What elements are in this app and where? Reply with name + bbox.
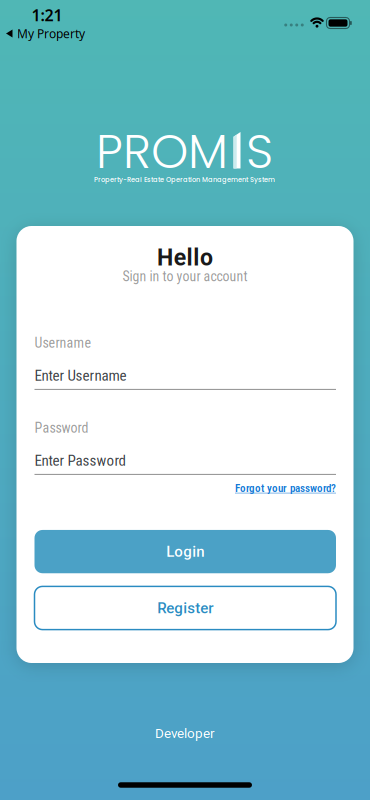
staticText: Property-Real Estate Operation Managemen… xyxy=(94,175,275,184)
staticText: Hello xyxy=(157,244,213,271)
staticText: S xyxy=(246,118,273,185)
button[interactable]: Enter Password xyxy=(34,452,336,482)
staticText: Sign in to your account xyxy=(122,268,247,285)
staticText: Enter Username xyxy=(34,367,126,384)
button[interactable]: Developer xyxy=(155,726,215,741)
button[interactable]: Register xyxy=(34,586,336,630)
staticText: Forgot your password? xyxy=(235,482,336,495)
staticText: Enter Password xyxy=(34,452,125,469)
staticText: Password xyxy=(34,420,88,436)
staticText: Register xyxy=(157,599,213,617)
button[interactable]: Enter Username xyxy=(34,367,336,397)
staticText: Developer xyxy=(155,726,215,741)
staticText: 1:21 xyxy=(31,4,62,26)
staticText: My Property xyxy=(17,25,85,41)
button[interactable]: My Property xyxy=(6,25,85,41)
staticText: Login xyxy=(166,543,204,560)
button[interactable]: Forgot your password? xyxy=(235,482,336,495)
button[interactable]: Login xyxy=(34,530,336,573)
staticText: PROM xyxy=(96,118,228,185)
staticText: Username xyxy=(34,335,91,351)
